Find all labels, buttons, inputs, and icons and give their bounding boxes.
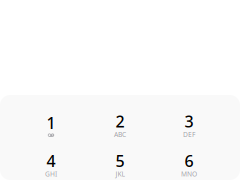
staticText: 4 bbox=[46, 150, 55, 171]
staticText: ABC bbox=[114, 130, 126, 139]
button[interactable]: 5 bbox=[85, 144, 154, 180]
staticText: MNO bbox=[181, 169, 197, 178]
staticText: 6 bbox=[184, 150, 193, 171]
staticText: DEF bbox=[183, 130, 195, 139]
staticText: 1 bbox=[46, 112, 55, 133]
button[interactable]: 2 bbox=[85, 105, 154, 144]
staticText: 5 bbox=[115, 150, 124, 171]
button[interactable]: 6 bbox=[154, 144, 223, 180]
staticText: 2 bbox=[115, 111, 124, 132]
button[interactable]: 1 bbox=[16, 105, 85, 144]
button[interactable]: 4 bbox=[16, 144, 85, 180]
staticText: JKL bbox=[115, 169, 124, 178]
staticText: 3 bbox=[184, 111, 193, 132]
staticText: GHI bbox=[45, 169, 57, 178]
button[interactable]: 3 bbox=[154, 105, 223, 144]
